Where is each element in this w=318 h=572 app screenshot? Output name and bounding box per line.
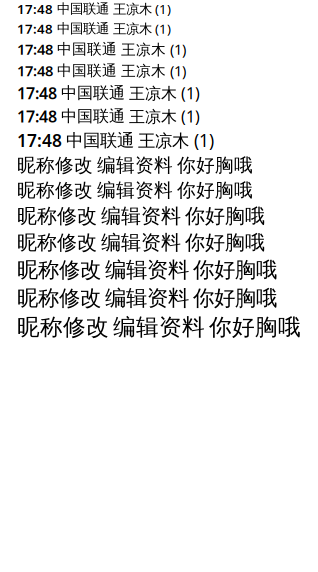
staticText: 昵称修改 — [17, 313, 109, 341]
staticText: 王凉木 (1) — [113, 0, 171, 18]
staticText: 你好胸哦 — [185, 230, 265, 255]
staticText: 王凉木 (1) — [129, 106, 200, 127]
staticText: 编辑资料 — [105, 257, 189, 283]
staticText: 中国联通 — [57, 1, 109, 17]
staticText: 17:48 — [17, 106, 57, 127]
staticText: 中国联通 — [61, 106, 125, 126]
staticText: 昵称修改 — [17, 154, 93, 177]
staticText: 中国联通 — [57, 62, 117, 80]
staticText: 昵称修改 — [17, 285, 101, 311]
staticText: 你好胸哦 — [209, 313, 301, 341]
staticText: 17:48 — [17, 20, 53, 37]
staticText: 中国联通 — [61, 83, 125, 103]
staticText: 王凉木 (1) — [113, 20, 171, 37]
staticText: 你好胸哦 — [185, 204, 265, 228]
staticText: 17:48 — [17, 82, 57, 104]
staticText: 17:48 — [17, 39, 53, 59]
staticText: 17:48 — [17, 129, 62, 152]
staticText: 王凉木 (1) — [129, 82, 200, 104]
staticText: 编辑资料 — [101, 204, 181, 228]
staticText: 中国联通 — [57, 20, 109, 37]
staticText: 编辑资料 — [113, 313, 205, 341]
staticText: 昵称修改 — [17, 257, 101, 283]
staticText: 昵称修改 — [17, 230, 97, 255]
staticText: 编辑资料 — [97, 179, 173, 202]
staticText: 王凉木 (1) — [121, 39, 186, 59]
staticText: 昵称修改 — [17, 204, 97, 228]
staticText: 编辑资料 — [105, 285, 189, 311]
staticText: 编辑资料 — [101, 230, 181, 255]
staticText: 17:48 — [17, 0, 53, 18]
staticText: 编辑资料 — [97, 154, 173, 177]
staticText: 你好胸哦 — [177, 179, 253, 202]
staticText: 中国联通 — [66, 130, 134, 151]
staticText: 你好胸哦 — [177, 154, 253, 177]
staticText: 你好胸哦 — [193, 257, 277, 283]
staticText: 王凉木 (1) — [121, 61, 186, 80]
staticText: 中国联通 — [57, 40, 117, 58]
staticText: 你好胸哦 — [193, 285, 277, 311]
staticText: 昵称修改 — [17, 179, 93, 202]
staticText: 17:48 — [17, 61, 53, 80]
staticText: 王凉木 (1) — [138, 129, 214, 152]
